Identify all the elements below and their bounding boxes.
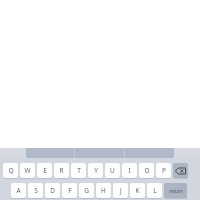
staticText: A [16,186,21,195]
staticText: return [169,188,183,194]
staticText: P [162,166,166,175]
button[interactable]: A [11,183,26,198]
staticText: E [43,166,47,175]
button[interactable]: U [105,163,120,178]
button[interactable]: F [62,183,77,198]
staticText: D [50,186,55,195]
staticText: O [144,166,150,175]
staticText: I [128,166,131,175]
staticText: H [101,186,106,195]
button[interactable]: I [122,163,137,178]
button[interactable]: Y [88,163,103,178]
button[interactable]: S [28,183,43,198]
staticText: F [68,186,72,195]
staticText: R [59,166,64,175]
staticText: T [77,166,81,175]
button[interactable]: L [147,183,162,198]
button[interactable]: K [130,183,145,198]
button[interactable]: Q [3,163,18,178]
staticText: Y [94,166,98,175]
button[interactable]: O [139,163,154,178]
staticText: G [84,186,89,195]
button[interactable]: G [79,183,94,198]
staticText: J [120,186,122,195]
button[interactable]: P [156,163,171,178]
button[interactable]: W [20,163,35,178]
staticText: W [24,166,31,175]
button[interactable]: Delete [173,163,188,178]
button[interactable]: R [54,163,69,178]
button[interactable]: J [113,183,128,198]
staticText: Q [8,166,14,175]
staticText: U [110,166,115,175]
button[interactable]: H [96,183,111,198]
staticText: S [34,186,38,195]
button[interactable]: D [45,183,60,198]
staticText: L [153,186,157,195]
button[interactable]: E [37,163,52,178]
staticText: K [135,186,140,195]
button[interactable]: return [164,183,187,198]
button[interactable]: T [71,163,86,178]
